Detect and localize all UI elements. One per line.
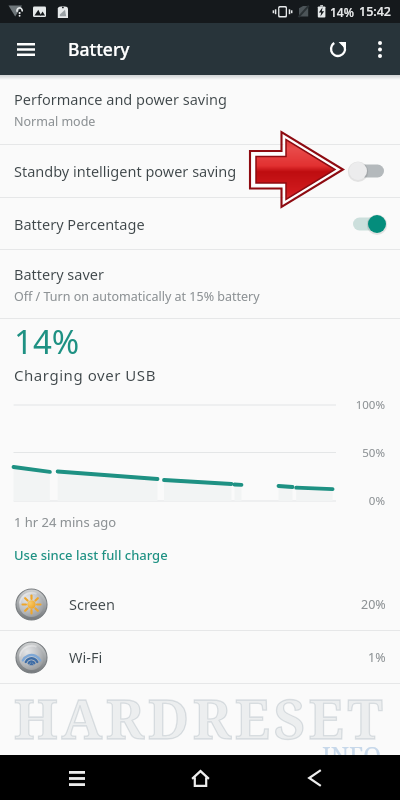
staticText: 14% [14,319,80,364]
staticText: HARDRESET [0,681,400,755]
staticText: .INFO [316,738,382,771]
button[interactable]: Battery Percentage [0,198,400,249]
staticText: Standby intelligent power saving [14,161,349,181]
button[interactable]: Navigation menu [7,30,45,68]
button[interactable]: More options [360,29,400,69]
staticText: 15:42 [359,3,392,20]
staticText: 1 hr 24 mins ago [14,513,117,531]
staticText: HARDRESET [0,681,400,755]
staticText: Wi-Fi [69,647,368,667]
staticText: 20% [361,596,386,613]
staticText: Performance and power saving [14,89,227,109]
staticText: Battery [68,37,130,61]
staticText: Battery Percentage [14,214,349,234]
button[interactable]: Recent apps [55,756,99,800]
button[interactable]: Standby intelligent power saving [0,145,400,197]
button[interactable]: Performance and power saving [0,75,400,144]
staticText: 0% [0,493,385,509]
staticText: 1% [368,649,386,666]
staticText: 100% [0,397,385,413]
button[interactable]: Wi-Fi [0,631,400,683]
button[interactable]: Back [293,756,337,800]
staticText: Battery saver [14,264,104,284]
staticText: Screen [69,594,361,614]
staticText: Off / Turn on automatically at 15% batte… [14,288,260,305]
button[interactable]: Battery saver [0,250,400,318]
button[interactable]: Refresh [316,27,360,71]
button[interactable]: Home [178,756,222,800]
staticText: Charging over USB [14,365,156,385]
staticText: Normal mode [14,113,96,130]
button[interactable]: Screen [0,578,400,630]
button[interactable]: Use since last full charge [14,546,168,564]
staticText: 14% [330,4,354,20]
staticText: 50% [0,445,385,461]
